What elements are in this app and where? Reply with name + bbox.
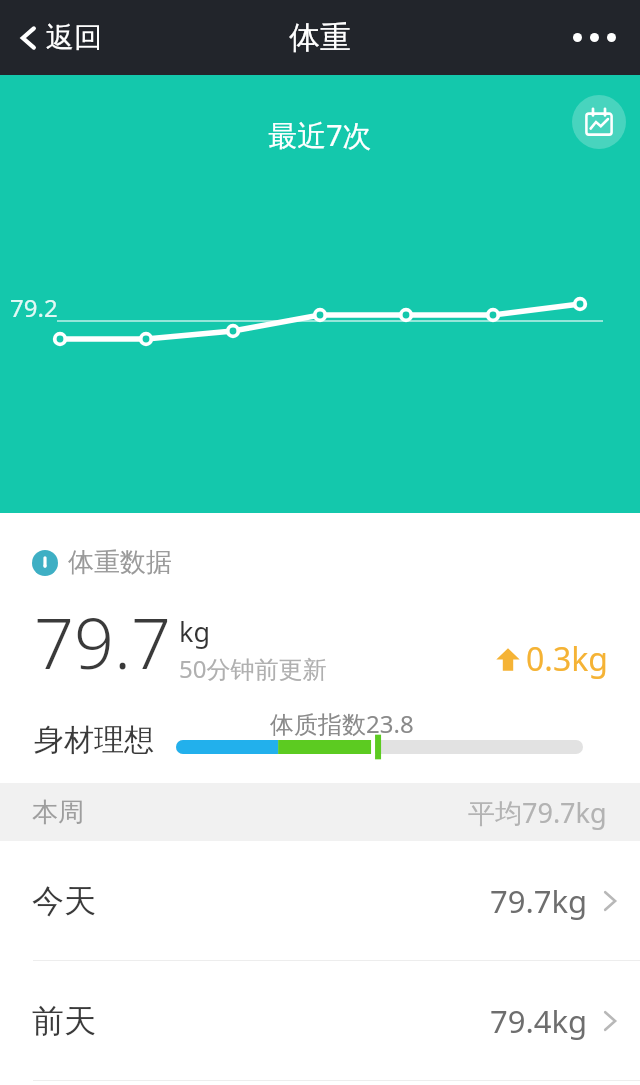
staticText: 最近7次	[268, 115, 372, 155]
button[interactable]: More options	[549, 15, 640, 60]
staticText: kg	[179, 613, 211, 650]
staticText: 50分钟前更新	[179, 652, 327, 685]
staticText: 今天	[32, 881, 96, 921]
staticText: 前天	[32, 1001, 96, 1041]
staticText: 79.2	[10, 291, 58, 324]
staticText: 身材理想	[34, 721, 154, 759]
button[interactable]: 返回	[0, 12, 116, 63]
staticText: 79.4kg	[490, 1000, 588, 1042]
button[interactable]: 前天	[0, 961, 640, 1081]
staticText: 体重	[289, 18, 351, 57]
staticText: 79.7kg	[490, 880, 588, 922]
staticText: 本周	[32, 796, 84, 829]
button[interactable]: 体重数据	[32, 546, 172, 579]
staticText: 平均79.7kg	[468, 794, 607, 831]
staticText: 体质指数23.8	[270, 707, 414, 740]
staticText: 体重数据	[68, 546, 172, 579]
button[interactable]: 今天	[0, 841, 640, 961]
staticText: 返回	[46, 20, 102, 55]
staticText: 0.3kg	[526, 637, 608, 681]
staticText: 79.7	[34, 594, 171, 689]
button[interactable]: View history chart	[572, 95, 626, 149]
